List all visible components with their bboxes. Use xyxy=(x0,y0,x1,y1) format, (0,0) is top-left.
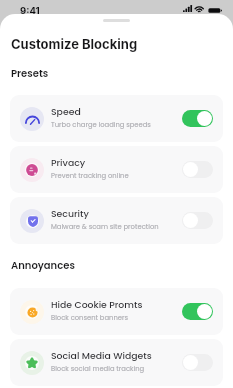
staticText: Prevent tracking online xyxy=(51,171,129,181)
button[interactable]: Speed xyxy=(10,95,223,142)
staticText: Hide Cookie Promts xyxy=(51,298,143,311)
staticText: Customize Blocking xyxy=(11,36,138,52)
button[interactable]: Disabled toggle xyxy=(182,161,213,178)
staticText: Annoyances xyxy=(11,258,75,272)
staticText: Block social media tracking xyxy=(51,364,145,374)
button[interactable]: Security xyxy=(10,197,223,244)
staticText: Security xyxy=(51,207,89,220)
button[interactable]: Enabled toggle xyxy=(182,303,213,320)
staticText: Turbo charge loading speeds xyxy=(51,120,151,130)
button[interactable]: Social Media Widgets xyxy=(10,339,223,386)
staticText: Presets xyxy=(11,66,49,80)
staticText: Malware & scam site protection xyxy=(51,222,159,232)
staticText: 9:41 xyxy=(20,5,40,17)
staticText: Privacy xyxy=(51,156,86,169)
button[interactable]: Hide Cookie Promts xyxy=(10,288,223,335)
button[interactable]: Privacy xyxy=(10,146,223,193)
staticText: Speed xyxy=(51,105,81,118)
staticText: Block consent banners xyxy=(51,313,129,323)
button[interactable]: Disabled toggle xyxy=(182,354,213,371)
button[interactable]: Enabled toggle xyxy=(182,110,213,127)
button[interactable]: Disabled toggle xyxy=(182,212,213,229)
staticText: Social Media Widgets xyxy=(51,349,152,362)
